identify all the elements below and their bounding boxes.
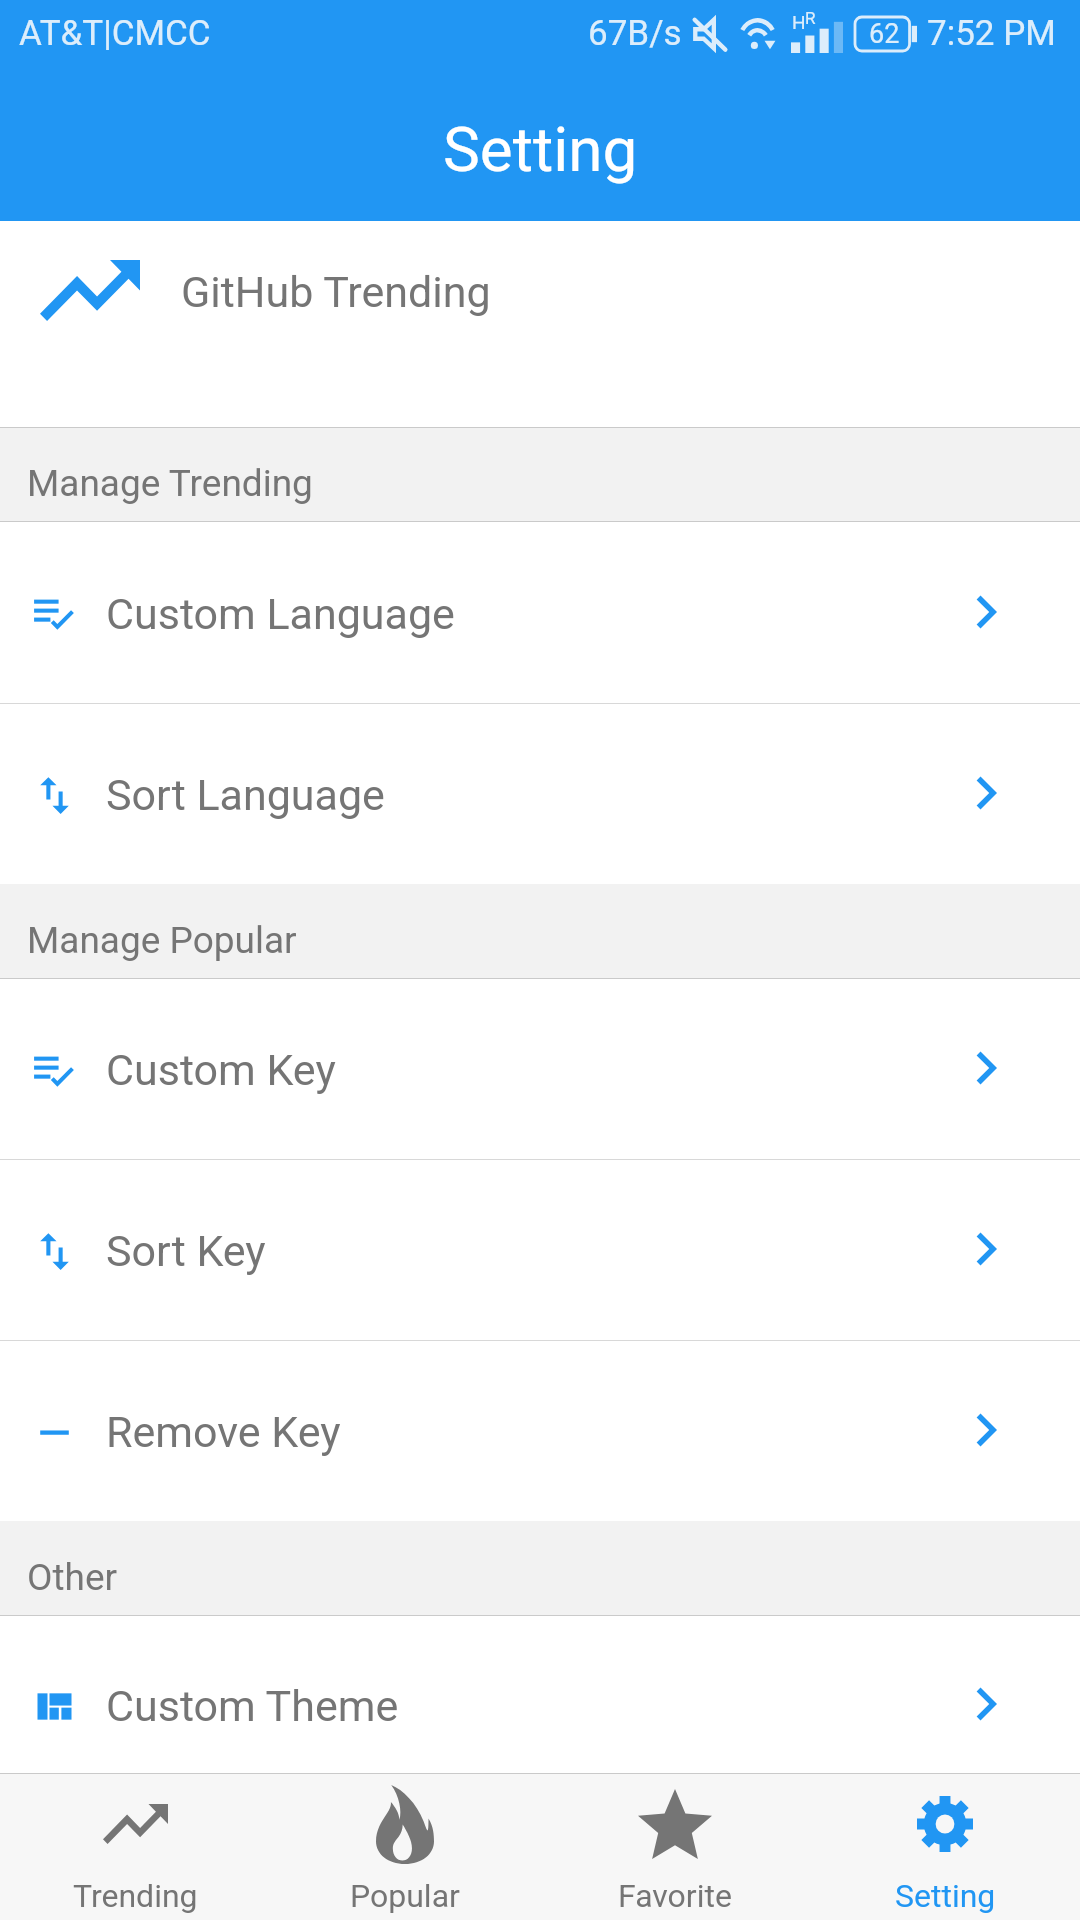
- other: Trending: [103, 1804, 168, 1844]
- staticText: Setting: [895, 1877, 996, 1915]
- staticText: Custom Theme: [106, 1681, 399, 1731]
- other: Favorite: [638, 1789, 712, 1859]
- button[interactable]: Trending: [0, 1774, 270, 1920]
- staticText: Custom Key: [106, 1045, 336, 1095]
- button[interactable]: Custom Key: [0, 979, 1080, 1159]
- staticText: Sort Language: [106, 770, 385, 820]
- button[interactable]: Remove Key: [0, 1341, 1080, 1521]
- staticText: Remove Key: [106, 1407, 341, 1457]
- staticText: Trending: [73, 1877, 198, 1915]
- staticText: Favorite: [618, 1877, 732, 1915]
- button[interactable]: Custom Theme: [0, 1616, 1080, 1772]
- button[interactable]: GitHub Trending: [0, 221, 1080, 427]
- staticText: 62: [869, 18, 900, 50]
- staticText: Other: [27, 1556, 118, 1599]
- staticText: R: [805, 8, 816, 28]
- staticText: Setting: [443, 113, 638, 186]
- staticText: Manage Trending: [27, 462, 313, 505]
- button[interactable]: Sort Language: [0, 704, 1080, 884]
- staticText: 7:52 PM: [927, 13, 1056, 54]
- staticText: Manage Popular: [27, 919, 297, 962]
- staticText: H: [792, 11, 806, 33]
- button[interactable]: Favorite: [540, 1774, 810, 1920]
- button[interactable]: Popular: [270, 1774, 540, 1920]
- button[interactable]: Sort Key: [0, 1160, 1080, 1340]
- staticText: Sort Key: [106, 1226, 266, 1276]
- other: Popular: [376, 1785, 434, 1864]
- staticText: Custom Language: [106, 589, 455, 639]
- other: Setting: [917, 1796, 973, 1852]
- staticText: AT&T|CMCC: [19, 13, 211, 54]
- staticText: 67B/s: [588, 13, 682, 54]
- button[interactable]: Setting: [810, 1774, 1080, 1920]
- staticText: GitHub Trending: [181, 267, 491, 317]
- button[interactable]: Custom Language: [0, 522, 1080, 703]
- staticText: Popular: [350, 1877, 460, 1915]
